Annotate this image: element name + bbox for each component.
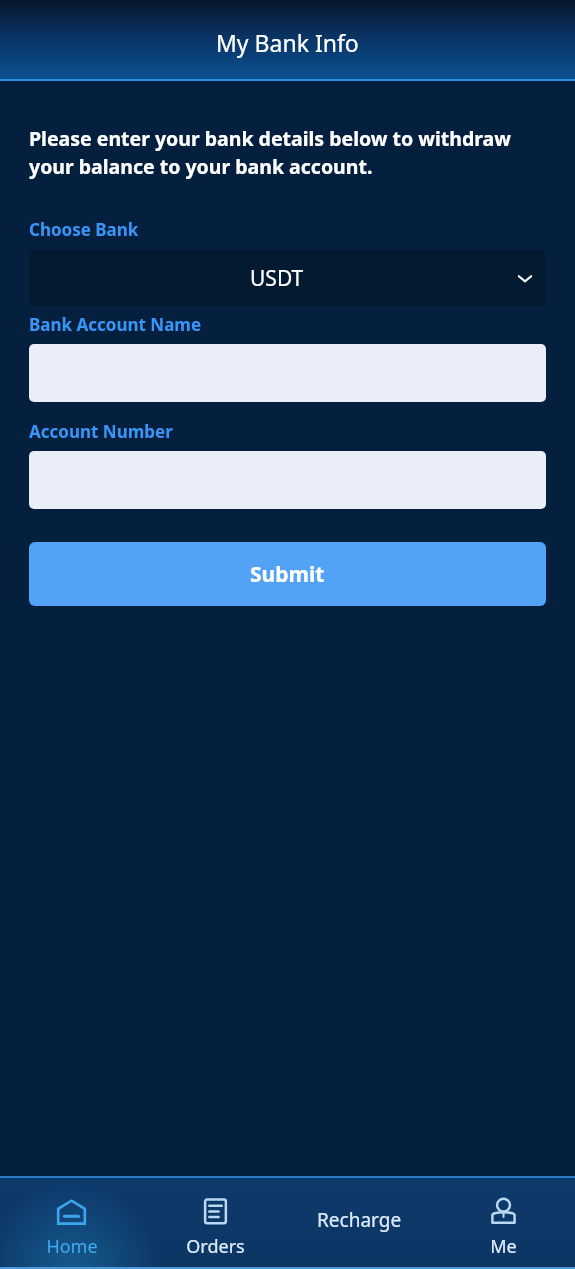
staticText: My Bank Info xyxy=(216,27,359,58)
button[interactable]: Recharge xyxy=(287,1182,431,1269)
other: Home xyxy=(53,1194,90,1231)
button[interactable] xyxy=(29,344,546,402)
staticText: Me xyxy=(490,1234,517,1259)
staticText: Bank Account Name xyxy=(29,313,202,336)
staticText: Home xyxy=(46,1234,98,1259)
staticText: Please enter your bank details below to … xyxy=(29,125,546,180)
button[interactable]: Home xyxy=(0,1182,143,1269)
staticText: Submit xyxy=(250,560,325,589)
button[interactable] xyxy=(29,451,546,509)
staticText: Choose Bank xyxy=(29,218,139,241)
button[interactable]: Submit xyxy=(29,542,546,606)
button[interactable]: USDT xyxy=(29,250,546,306)
button[interactable]: Orders xyxy=(143,1182,287,1269)
staticText: Orders xyxy=(186,1234,245,1259)
button[interactable]: Me xyxy=(431,1182,575,1269)
staticText: Account Number xyxy=(29,420,173,443)
other: Me xyxy=(485,1194,522,1231)
other: Orders xyxy=(197,1194,234,1231)
staticText: Recharge xyxy=(317,1207,402,1233)
staticText: USDT xyxy=(250,264,304,293)
